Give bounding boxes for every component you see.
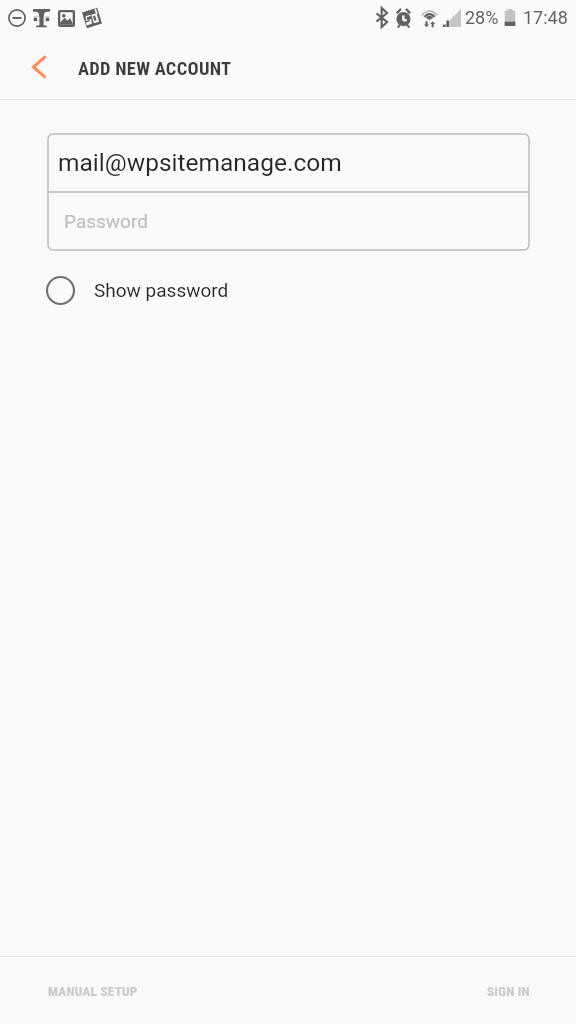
button[interactable]: Show password <box>40 268 243 312</box>
button[interactable]: mail@wpsitemanage.com <box>48 134 529 192</box>
staticText: Show password <box>94 279 229 301</box>
staticText: 28% <box>465 7 499 28</box>
button[interactable]: Navigate up <box>16 45 60 89</box>
staticText: mail@wpsitemanage.com <box>58 148 342 177</box>
staticText: Password <box>64 210 148 232</box>
staticText: SIGN IN <box>487 984 530 999</box>
button[interactable]: MANUAL SETUP <box>0 969 186 1013</box>
staticText: ADD NEW ACCOUNT <box>78 58 232 80</box>
button[interactable]: SIGN IN <box>441 969 576 1013</box>
staticText: 17:48 <box>523 7 568 28</box>
button[interactable]: Password <box>48 192 529 250</box>
staticText: MANUAL SETUP <box>48 984 138 999</box>
